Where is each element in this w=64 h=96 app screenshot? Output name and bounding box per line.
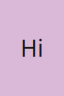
staticText: Hi [20, 33, 43, 63]
